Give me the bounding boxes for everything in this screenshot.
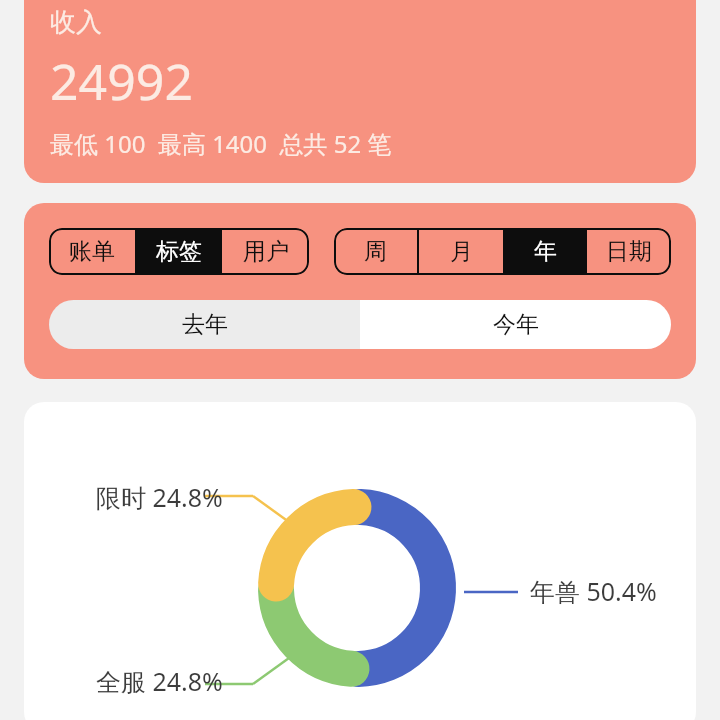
staticText: 收入 <box>50 6 102 39</box>
staticText: 周 <box>364 237 387 266</box>
staticText: 全服 24.8% <box>96 664 223 698</box>
button[interactable]: 标签 <box>135 228 222 275</box>
button[interactable]: 日期 <box>587 228 671 275</box>
staticText: 去年 <box>182 310 228 339</box>
button[interactable]: 年 <box>503 228 587 275</box>
staticText: 月 <box>450 237 473 266</box>
staticText: 限时 24.8% <box>96 480 223 514</box>
staticText: 今年 <box>493 310 539 339</box>
staticText: 年兽 50.4% <box>530 574 657 608</box>
button[interactable]: 周 <box>334 228 417 275</box>
button[interactable]: 月 <box>419 228 503 275</box>
button[interactable]: 用户 <box>222 228 309 275</box>
staticText: 最低 100 最高 1400 总共 52 笔 <box>50 127 392 160</box>
button[interactable]: 收入 <box>24 0 696 183</box>
button[interactable]: 账单 <box>49 228 135 275</box>
staticText: 24992 <box>50 47 193 115</box>
staticText: 日期 <box>606 237 652 266</box>
staticText: 用户 <box>243 237 289 266</box>
staticText: 年 <box>534 237 557 266</box>
button[interactable]: 去年 <box>49 300 360 349</box>
staticText: 账单 <box>69 237 115 266</box>
button[interactable]: 今年 <box>360 300 671 349</box>
staticText: 标签 <box>156 237 202 266</box>
